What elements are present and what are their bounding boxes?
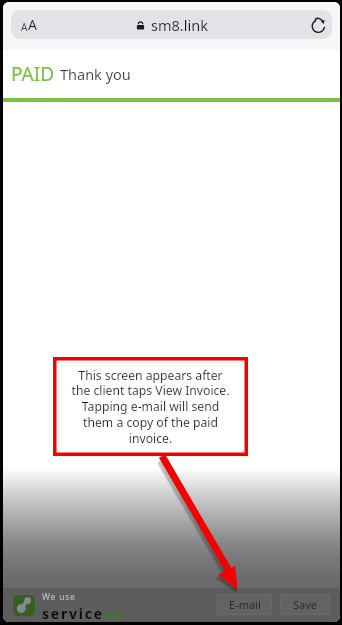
- button[interactable]: A: [11, 10, 332, 39]
- button[interactable]: Save: [280, 594, 330, 615]
- staticText: PAID: [11, 61, 54, 87]
- staticText: M8: [105, 608, 123, 622]
- staticText: A: [28, 15, 37, 34]
- staticText: Thank you: [60, 64, 131, 84]
- staticText: We use: [42, 591, 76, 603]
- staticText: Save: [293, 597, 318, 612]
- button[interactable]: Reload: [310, 16, 328, 34]
- staticText: service: [42, 604, 105, 622]
- staticText: sm8.link: [151, 15, 208, 35]
- staticText: E-mail: [229, 597, 261, 612]
- button[interactable]: E-mail: [217, 594, 272, 615]
- staticText: This screen appears after the client tap…: [71, 367, 230, 447]
- staticText: A: [21, 20, 28, 34]
